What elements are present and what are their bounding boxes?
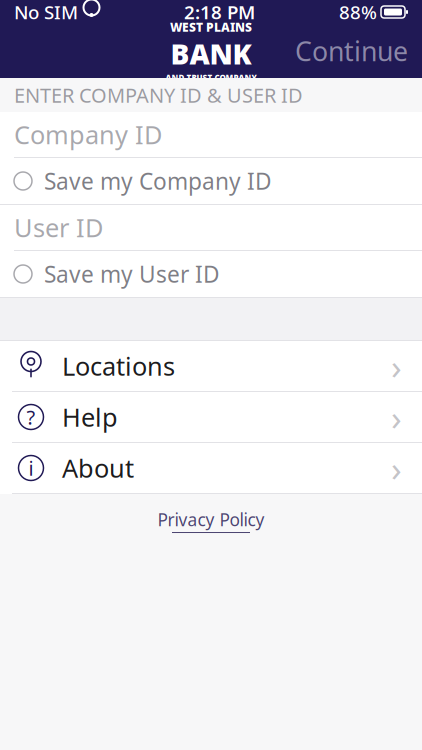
button[interactable]: ? <box>0 392 422 443</box>
staticText: AND TRUST COMPANY <box>165 72 256 83</box>
staticText: No SIM <box>14 0 78 24</box>
staticText: Privacy Policy <box>157 508 264 531</box>
button[interactable]: Continue <box>281 25 422 77</box>
staticText: i <box>28 455 33 481</box>
button[interactable]: Locations <box>0 341 422 392</box>
button[interactable]: Save my Company ID <box>0 158 422 205</box>
staticText: Continue <box>295 33 408 69</box>
staticText: › <box>391 394 402 440</box>
staticText: 88% <box>339 0 377 24</box>
staticText: ENTER COMPANY ID & USER ID <box>14 82 303 108</box>
staticText: BANK <box>170 35 251 72</box>
staticText: About <box>62 451 134 485</box>
button[interactable]: i <box>0 443 422 494</box>
staticText: › <box>391 343 402 389</box>
button[interactable]: Save my User ID <box>0 251 422 297</box>
staticText: Save my Company ID <box>44 166 272 196</box>
staticText: Help <box>62 400 118 434</box>
staticText: › <box>391 445 402 491</box>
staticText: Locations <box>62 349 175 383</box>
staticText: Company ID <box>14 118 162 151</box>
staticText: ? <box>26 404 35 430</box>
staticText: 2:18 PM <box>184 0 255 24</box>
staticText: WEST PLAINS <box>170 19 252 35</box>
staticText: Save my User ID <box>44 259 220 289</box>
staticText: User ID <box>14 211 103 244</box>
button[interactable]: Privacy Policy <box>0 494 422 543</box>
